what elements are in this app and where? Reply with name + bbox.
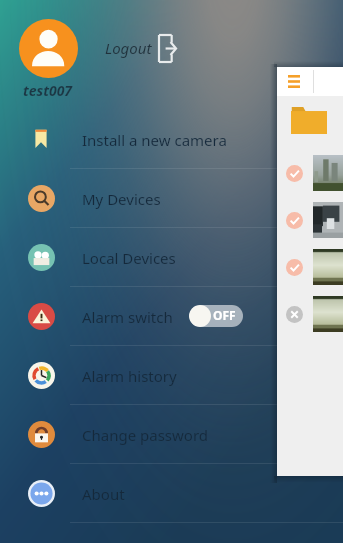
staticText: Local Devices: [82, 248, 176, 268]
button[interactable]: Logout: [105, 34, 177, 63]
button[interactable]: Open navigation menu: [280, 67, 308, 95]
button[interactable]: [277, 297, 343, 337]
staticText: Install a new camera: [82, 130, 227, 150]
button[interactable]: Local Devices: [0, 228, 343, 287]
button[interactable]: My Devices: [0, 169, 343, 228]
staticText: OFF: [213, 307, 236, 323]
button[interactable]: Profile picture: [19, 19, 78, 78]
staticText: Alarm history: [82, 366, 177, 386]
button[interactable]: Install a new camera: [0, 110, 343, 169]
button[interactable]: Alarm switch: [0, 287, 343, 346]
button[interactable]: [277, 250, 343, 290]
staticText: Change password: [82, 425, 209, 445]
staticText: test007: [23, 81, 73, 100]
button[interactable]: Alarm switch, off: [189, 305, 243, 327]
staticText: Alarm switch: [82, 307, 173, 327]
button[interactable]: Change password: [0, 405, 343, 464]
staticText: My Devices: [82, 189, 161, 209]
button[interactable]: Alarm history: [0, 346, 343, 405]
staticText: About: [82, 484, 125, 504]
staticText: Logout: [105, 38, 152, 58]
button[interactable]: [277, 203, 343, 243]
button[interactable]: [277, 156, 343, 196]
button[interactable]: About: [0, 464, 343, 523]
